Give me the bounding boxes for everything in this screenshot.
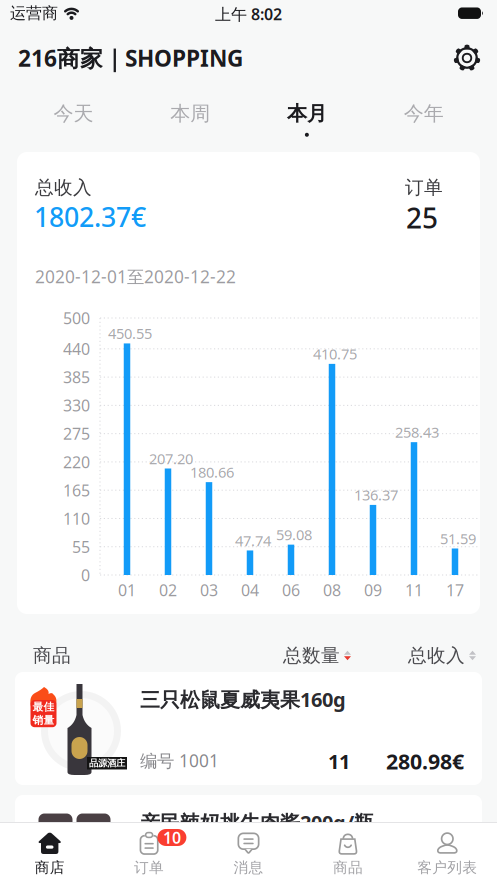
button[interactable]: 本周 xyxy=(132,97,249,141)
staticText: 总收入 xyxy=(35,176,92,199)
staticText: 110 xyxy=(63,508,90,529)
staticText: 最佳 xyxy=(32,700,54,714)
staticText: 55 xyxy=(72,536,90,557)
staticText: 亲民辣妈挑牛肉酱200g/瓶 xyxy=(140,809,374,836)
staticText: 275 xyxy=(63,423,90,444)
staticText: 订单 xyxy=(405,176,443,199)
staticText: 385 xyxy=(63,366,90,388)
staticText: 136.37 xyxy=(354,485,398,505)
staticText: 06 xyxy=(282,579,300,601)
staticText: 订单 xyxy=(134,858,164,876)
staticText: 运营商 xyxy=(10,3,58,23)
staticText: 47.74 xyxy=(235,531,271,550)
button[interactable]: 今天 xyxy=(15,97,132,141)
staticText: 09 xyxy=(364,579,382,601)
button[interactable]: 总数量 xyxy=(283,644,351,667)
staticText: 03 xyxy=(200,579,218,601)
staticText: 客户列表 xyxy=(417,858,477,876)
button[interactable]: 本月 xyxy=(248,97,365,141)
staticText: 总收入 xyxy=(408,644,465,667)
staticText: 08 xyxy=(323,579,341,601)
button[interactable]: 总收入 xyxy=(408,644,476,667)
staticText: 今天 xyxy=(53,101,93,126)
staticText: 商店 xyxy=(35,858,65,876)
staticText: 销量 xyxy=(32,714,54,727)
button[interactable]: 商店 xyxy=(0,822,99,883)
staticText: 品源酒庄 xyxy=(89,757,125,769)
staticText: 编号 1001 xyxy=(140,749,219,772)
staticText: 商品 xyxy=(333,858,363,876)
button[interactable]: 亲民辣妈挑牛肉酱200g/瓶 xyxy=(15,795,482,883)
staticText: 02 xyxy=(159,579,177,601)
staticText: 500 xyxy=(63,307,90,329)
staticText: 410.75 xyxy=(313,344,357,364)
staticText: 上午 8:02 xyxy=(215,3,282,25)
staticText: 本月 xyxy=(287,101,327,126)
staticText: 180.66 xyxy=(190,462,234,482)
staticText: 51.59 xyxy=(440,529,476,548)
staticText: 04 xyxy=(241,579,259,601)
staticText: 商品 xyxy=(33,644,71,667)
staticText: 440 xyxy=(63,338,90,359)
staticText: 消息 xyxy=(233,858,263,876)
button[interactable]: 今年 xyxy=(365,97,482,141)
staticText: 207.20 xyxy=(149,449,193,468)
staticText: 11 xyxy=(405,579,423,601)
staticText: 59.08 xyxy=(276,525,312,544)
staticText: 10 xyxy=(163,827,181,848)
staticText: 25 xyxy=(406,199,438,236)
staticText: 总数量 xyxy=(283,644,340,667)
staticText: 165 xyxy=(63,480,90,501)
staticText: 今年 xyxy=(404,101,444,126)
button[interactable] xyxy=(453,44,481,72)
staticText: 2020-12-01至2020-12-22 xyxy=(35,265,236,288)
button[interactable]: 订单 xyxy=(99,822,199,883)
staticText: 216商家｜SHOPPING xyxy=(18,43,243,73)
button[interactable]: 商品 xyxy=(298,822,398,883)
staticText: 01 xyxy=(118,579,136,601)
staticText: 三只松鼠夏威夷果160g xyxy=(140,686,346,713)
staticText: 280.98€ xyxy=(386,747,464,775)
staticText: 258.43 xyxy=(395,422,439,442)
button[interactable]: 消息 xyxy=(199,822,298,883)
staticText: 220 xyxy=(63,451,90,472)
staticText: 17 xyxy=(446,579,464,601)
staticText: 本周 xyxy=(170,101,210,126)
staticText: 450.55 xyxy=(108,324,152,343)
button[interactable]: 客户列表 xyxy=(398,822,497,883)
staticText: 11 xyxy=(328,748,350,775)
button[interactable]: 品源酒庄 xyxy=(15,672,482,785)
staticText: 1802.37€ xyxy=(34,199,146,234)
staticText: 330 xyxy=(63,395,90,416)
staticText: 0 xyxy=(81,564,90,586)
